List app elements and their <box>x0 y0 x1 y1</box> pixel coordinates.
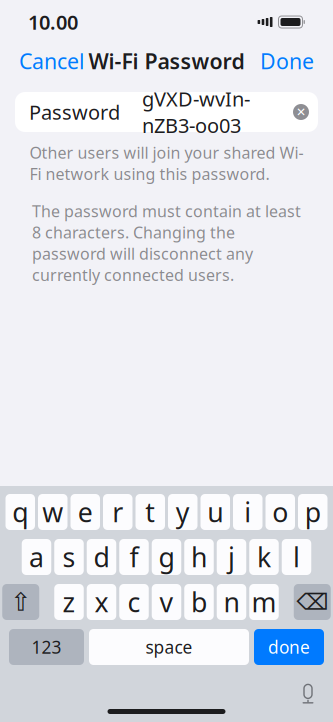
button[interactable]: b <box>184 584 214 620</box>
button[interactable]: q <box>5 494 35 530</box>
staticText: Done <box>260 47 314 75</box>
staticText: done <box>268 635 310 658</box>
button[interactable]: Delete <box>294 584 331 620</box>
staticText: Other users will join your shared Wi-Fi … <box>29 142 303 184</box>
staticText: k <box>257 539 271 575</box>
button[interactable]: s <box>54 539 84 575</box>
staticText: f <box>129 539 138 575</box>
button[interactable]: Clear text <box>286 97 316 127</box>
staticText: gVXD-wvIn-nZB3-oo03 <box>142 85 250 138</box>
button[interactable]: p <box>298 494 327 530</box>
button[interactable]: w <box>38 494 67 530</box>
staticText: l <box>293 539 300 575</box>
button[interactable]: Dictate <box>291 676 325 710</box>
button[interactable]: v <box>152 584 181 620</box>
button[interactable]: done <box>254 629 324 665</box>
button[interactable]: r <box>103 494 132 530</box>
staticText: t <box>145 494 155 530</box>
staticText: m <box>251 584 276 620</box>
button[interactable]: o <box>265 494 295 530</box>
button[interactable]: e <box>70 494 100 530</box>
staticText: g <box>158 539 174 575</box>
button[interactable]: n <box>217 584 246 620</box>
staticText: u <box>207 494 223 530</box>
staticText: ✕ <box>296 105 306 119</box>
staticText: ⇧ <box>10 588 31 616</box>
button[interactable]: j <box>217 539 246 575</box>
staticText: z <box>62 584 75 620</box>
button[interactable]: Done <box>246 39 328 83</box>
button[interactable]: t <box>135 494 165 530</box>
button[interactable]: y <box>168 494 197 530</box>
staticText: o <box>272 494 288 530</box>
staticText: 123 <box>31 635 61 658</box>
button[interactable]: x <box>87 584 116 620</box>
staticText: n <box>223 584 239 620</box>
staticText: j <box>228 539 235 575</box>
button[interactable]: l <box>282 539 311 575</box>
button[interactable]: space <box>89 629 249 665</box>
staticText: b <box>191 584 207 620</box>
staticText: d <box>93 539 109 575</box>
button[interactable]: Shift <box>2 584 39 620</box>
staticText: s <box>62 539 75 575</box>
staticText: x <box>94 584 108 620</box>
button[interactable]: i <box>233 494 262 530</box>
button[interactable]: u <box>200 494 230 530</box>
staticText: y <box>176 494 190 530</box>
staticText: Password <box>29 99 120 125</box>
button[interactable]: k <box>249 539 279 575</box>
staticText: a <box>29 539 44 575</box>
button[interactable]: Password <box>15 92 318 132</box>
button[interactable]: a <box>22 539 51 575</box>
button[interactable]: f <box>119 539 149 575</box>
staticText: q <box>12 494 28 530</box>
staticText: Cancel <box>19 47 85 75</box>
button[interactable]: 123 <box>9 629 84 665</box>
staticText: e <box>78 494 93 530</box>
staticText: The password must contain at least 8 cha… <box>32 200 301 285</box>
button[interactable]: z <box>54 584 84 620</box>
staticText: h <box>191 539 207 575</box>
staticText: p <box>305 494 321 530</box>
staticText: c <box>127 584 140 620</box>
staticText: 10.00 <box>28 9 78 35</box>
button[interactable]: Cancel <box>5 39 99 83</box>
staticText: ⌫ <box>296 589 328 615</box>
staticText: Wi-Fi Password <box>88 47 244 75</box>
button[interactable]: d <box>87 539 116 575</box>
staticText: v <box>159 584 173 620</box>
staticText: w <box>42 494 63 530</box>
button[interactable]: h <box>184 539 214 575</box>
button[interactable]: m <box>249 584 279 620</box>
staticText: r <box>112 494 123 530</box>
button[interactable]: g <box>152 539 181 575</box>
staticText: i <box>244 494 251 530</box>
button[interactable]: c <box>119 584 149 620</box>
staticText: space <box>145 635 192 658</box>
